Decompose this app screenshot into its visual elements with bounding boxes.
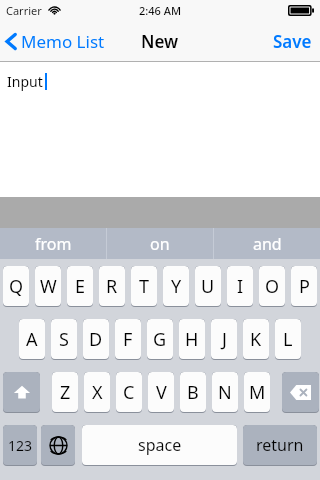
staticText: 123 xyxy=(8,436,33,455)
staticText: P xyxy=(299,274,310,299)
staticText: O xyxy=(265,274,280,299)
staticText: Carrier xyxy=(6,3,42,18)
button[interactable]: Change keyboard xyxy=(41,425,75,466)
button[interactable]: B xyxy=(180,372,206,413)
button[interactable]: Save xyxy=(269,25,316,58)
button[interactable]: X xyxy=(84,372,110,413)
staticText: H xyxy=(185,327,199,352)
staticText: C xyxy=(123,380,135,405)
button[interactable]: J xyxy=(211,319,237,360)
staticText: L xyxy=(283,327,293,352)
button[interactable]: L xyxy=(275,319,301,360)
button[interactable]: T xyxy=(131,266,157,307)
button[interactable]: Backspace xyxy=(282,372,319,413)
staticText: N xyxy=(218,380,232,405)
button[interactable]: return xyxy=(243,425,317,466)
staticText: G xyxy=(153,327,167,352)
staticText: and xyxy=(253,233,282,255)
button[interactable]: H xyxy=(179,319,205,360)
button[interactable]: space xyxy=(82,425,237,466)
staticText: A xyxy=(26,327,38,352)
staticText: space xyxy=(138,434,182,456)
button[interactable]: O xyxy=(259,266,285,307)
button[interactable]: U xyxy=(195,266,221,307)
staticText: Save xyxy=(273,30,312,53)
staticText: Q xyxy=(9,274,24,299)
button[interactable]: S xyxy=(51,319,77,360)
staticText: New xyxy=(141,30,179,53)
button[interactable]: 123 xyxy=(3,425,37,466)
button[interactable]: F xyxy=(115,319,141,360)
staticText: Z xyxy=(60,380,71,405)
staticText: Y xyxy=(171,274,182,299)
staticText: X xyxy=(92,380,103,405)
button[interactable]: K xyxy=(243,319,269,360)
button[interactable]: and xyxy=(214,228,320,259)
staticText: Memo List xyxy=(21,30,105,53)
button[interactable]: D xyxy=(83,319,109,360)
button[interactable]: V xyxy=(148,372,174,413)
staticText: R xyxy=(106,274,118,299)
button[interactable]: G xyxy=(147,319,173,360)
button[interactable]: Z xyxy=(52,372,78,413)
button[interactable]: N xyxy=(212,372,238,413)
button[interactable]: from xyxy=(0,228,106,259)
staticText: B xyxy=(187,380,199,405)
button[interactable]: Q xyxy=(3,266,29,307)
staticText: 2:46 AM xyxy=(139,3,182,18)
button[interactable]: Memo List xyxy=(5,26,111,57)
button[interactable]: Shift xyxy=(3,372,40,413)
staticText: W xyxy=(40,274,57,299)
staticText: I xyxy=(237,274,244,299)
staticText: U xyxy=(201,274,215,299)
staticText: from xyxy=(35,233,72,255)
button[interactable]: W xyxy=(35,266,61,307)
button[interactable]: E xyxy=(67,266,93,307)
staticText: D xyxy=(89,327,103,352)
staticText: return xyxy=(256,434,304,456)
staticText: T xyxy=(139,274,150,299)
staticText: M xyxy=(249,380,266,405)
staticText: Input xyxy=(7,72,43,91)
staticText: V xyxy=(156,380,167,405)
staticText: E xyxy=(75,274,86,299)
staticText: J xyxy=(222,327,227,352)
button[interactable]: on xyxy=(107,228,213,259)
button[interactable]: R xyxy=(99,266,125,307)
button[interactable]: Y xyxy=(163,266,189,307)
staticText: on xyxy=(150,233,170,255)
staticText: F xyxy=(123,327,133,352)
staticText: S xyxy=(59,327,69,352)
button[interactable]: M xyxy=(244,372,270,413)
button[interactable]: I xyxy=(227,266,253,307)
button[interactable]: P xyxy=(291,266,317,307)
button[interactable]: A xyxy=(19,319,45,360)
staticText: K xyxy=(250,327,262,352)
button[interactable]: C xyxy=(116,372,142,413)
